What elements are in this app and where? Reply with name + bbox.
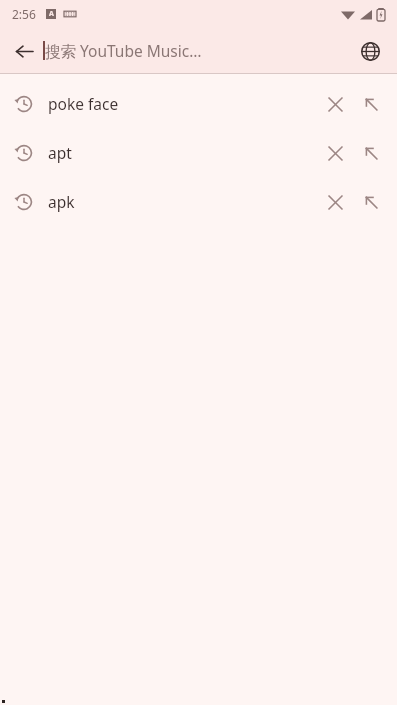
button[interactable]: apk (0, 177, 397, 226)
button[interactable]: Fill query (353, 86, 389, 122)
button[interactable]: Fill query (353, 184, 389, 220)
staticText: 2:56 (12, 6, 36, 22)
button[interactable]: poke face (0, 79, 397, 128)
staticText: A (49, 9, 54, 19)
button[interactable]: Remove (317, 86, 353, 122)
staticText: apt (48, 142, 72, 163)
staticText: apk (48, 191, 75, 212)
staticText: 搜索 YouTube Music… (45, 40, 202, 61)
button[interactable]: Fill query (353, 135, 389, 171)
button[interactable]: Language (353, 34, 387, 68)
button[interactable]: Remove (317, 184, 353, 220)
button[interactable]: Remove (317, 135, 353, 171)
button[interactable]: apt (0, 128, 397, 177)
button[interactable]: Back (8, 35, 40, 67)
staticText: poke face (48, 93, 119, 114)
